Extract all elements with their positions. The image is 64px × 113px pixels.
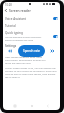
staticText: Settings <box>5 44 17 48</box>
staticText: Hear spoken feedback while using <box>5 56 42 59</box>
button[interactable]: Toggle <box>53 17 58 20</box>
button[interactable]: Tutorial <box>3 22 60 30</box>
staticText: Tutorial <box>5 24 16 28</box>
staticText: touch are read out loud. <box>5 62 32 65</box>
button[interactable]: Speech rate <box>18 45 45 57</box>
staticText: your phone. Descriptions of what you <box>5 59 46 62</box>
button[interactable]: Voice Assistant <box>3 15 60 22</box>
staticText: If your screen reader is on, you can exp… <box>5 67 58 79</box>
button[interactable]: Home <box>28 102 36 110</box>
button[interactable]: Recent apps <box>11 102 19 110</box>
staticText: Speech rate <box>23 49 41 53</box>
button[interactable]: Back <box>44 102 52 110</box>
staticText: quickly by tapping only once <box>5 39 33 42</box>
staticText: Screen reader <box>9 8 31 12</box>
button[interactable]: Navigate up <box>3 7 9 13</box>
button[interactable]: Next <box>45 45 60 57</box>
staticText: Quick typing <box>5 31 23 35</box>
button[interactable]: Toggle <box>53 35 58 38</box>
button[interactable]: Previous <box>3 45 18 57</box>
staticText: 10:28 <box>5 3 12 7</box>
button[interactable]: Quick typing <box>3 30 60 43</box>
staticText: Use the keyboard to input characters <box>5 36 42 39</box>
staticText: Voice Assistant <box>5 17 26 21</box>
